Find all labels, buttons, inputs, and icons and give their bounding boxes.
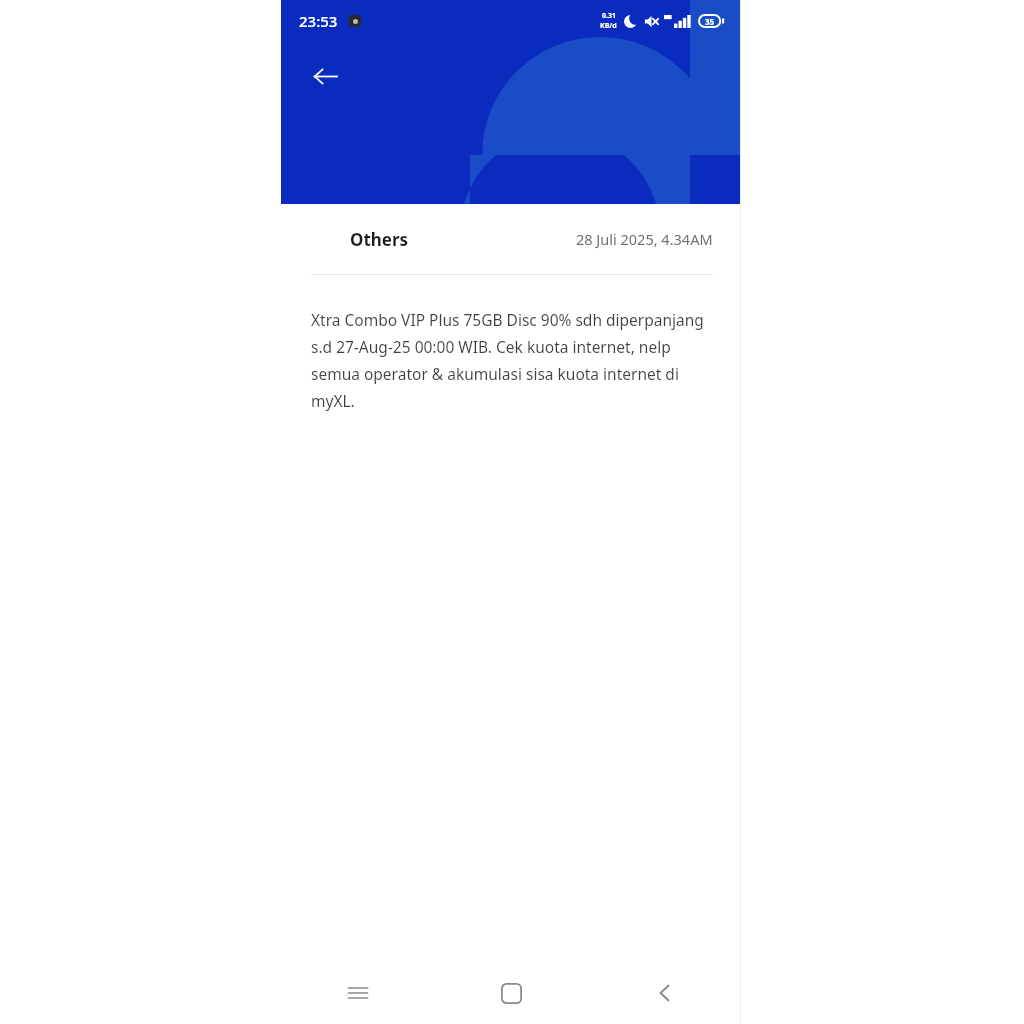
button[interactable]: Back (588, 962, 741, 1024)
staticText: Xtra Combo VIP Plus 75GB Disc 90% sdh di… (311, 309, 719, 411)
staticText: 28 Juli 2025, 4.34AM (576, 229, 713, 249)
button[interactable]: Home (435, 962, 588, 1024)
button[interactable]: Back (301, 52, 349, 100)
staticText: 23:53 (299, 11, 338, 31)
staticText: 35 (705, 16, 715, 27)
button[interactable]: Recent apps (281, 962, 435, 1024)
staticText: KB/d (600, 21, 617, 31)
staticText: Others (350, 228, 409, 251)
staticText: 0.31 (602, 11, 616, 21)
